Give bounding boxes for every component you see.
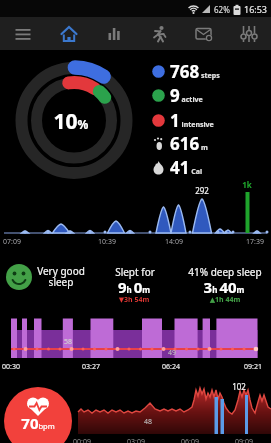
button[interactable]: 768 steps — [151, 59, 220, 83]
staticText: ▼3h 54m — [103, 295, 165, 305]
button[interactable]: 41 Cal — [151, 155, 203, 179]
staticText: 9 active — [170, 84, 203, 107]
staticText: 102 — [219, 381, 259, 392]
staticText: 3h 40m — [184, 277, 264, 297]
staticText: 03:09 — [121, 437, 151, 443]
staticText: 48 — [136, 417, 160, 427]
staticText: 9h 0m — [103, 277, 165, 297]
button[interactable] — [0, 17, 46, 50]
staticText: 10:39 — [92, 237, 122, 247]
staticText: 1k — [235, 179, 259, 190]
staticText: 292 — [186, 185, 218, 196]
button[interactable]: 616 m — [151, 131, 208, 155]
staticText: 06:24 — [156, 362, 186, 372]
staticText: 09:09 — [229, 437, 259, 443]
staticText: 10% — [41, 107, 101, 136]
button[interactable]: 1 intensive — [151, 108, 214, 132]
button[interactable]: 70bpm — [4, 387, 72, 443]
staticText: ▲1h 44m — [185, 295, 265, 305]
staticText: 00:30 — [2, 362, 32, 372]
staticText: 62% — [214, 4, 230, 15]
button[interactable] — [226, 17, 271, 50]
staticText: 17:39 — [234, 237, 264, 247]
staticText: 09:21 — [238, 362, 268, 372]
staticText: 41% deep sleep — [183, 265, 267, 279]
staticText: Very good sleep — [26, 264, 96, 289]
staticText: 14:09 — [159, 237, 189, 247]
staticText: 58 — [56, 337, 80, 347]
staticText: 70bpm — [4, 413, 72, 433]
button[interactable] — [5, 263, 33, 291]
staticText: 16:53 — [244, 3, 268, 15]
button[interactable]: 9 active — [151, 83, 203, 107]
button[interactable] — [46, 17, 91, 50]
staticText: 768 steps — [170, 60, 220, 83]
staticText: 616 m — [170, 132, 208, 155]
staticText: 00:09 — [67, 437, 97, 443]
staticText: 03:27 — [76, 362, 106, 372]
button[interactable] — [136, 17, 181, 50]
staticText: 49 — [160, 348, 184, 358]
staticText: Slept for — [105, 265, 165, 279]
staticText: 06:09 — [175, 437, 205, 443]
staticText: 41 Cal — [170, 156, 203, 179]
staticText: 1 intensive — [170, 109, 214, 132]
staticText: 07:09 — [3, 237, 33, 247]
button[interactable] — [181, 17, 226, 50]
button[interactable] — [91, 17, 136, 50]
